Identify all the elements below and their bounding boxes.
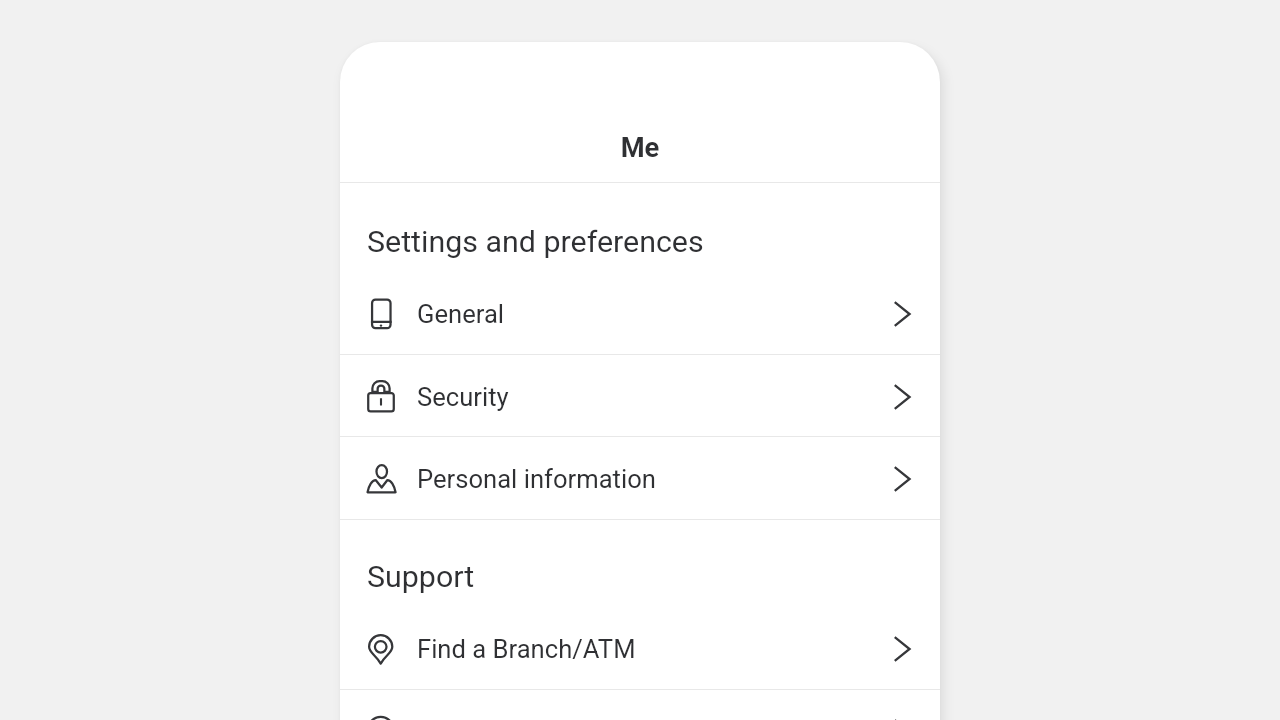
button[interactable]: Find a Branch/ATM	[340, 607, 940, 689]
other: Open Help	[886, 715, 918, 720]
staticText: Settings and preferences	[367, 224, 704, 260]
other: Open Find a Branch/ATM	[886, 632, 918, 664]
other: Open Security	[886, 380, 918, 412]
other: Open Personal information	[886, 462, 918, 494]
other: General	[365, 297, 397, 329]
other: Personal information	[365, 462, 397, 494]
button[interactable]: General	[340, 272, 940, 354]
other: Help	[365, 715, 397, 720]
button[interactable]: Personal information	[340, 437, 940, 519]
other: Find a Branch/ATM	[365, 632, 397, 664]
staticText: Security	[417, 382, 886, 412]
button[interactable]: Help	[340, 690, 940, 720]
staticText: Personal information	[417, 464, 886, 494]
staticText: General	[417, 299, 886, 329]
other: Security	[365, 380, 397, 412]
staticText: Support	[367, 559, 475, 595]
other: Open General	[886, 297, 918, 329]
staticText: Me	[340, 132, 940, 164]
staticText: Find a Branch/ATM	[417, 634, 886, 664]
button[interactable]: Security	[340, 355, 940, 436]
